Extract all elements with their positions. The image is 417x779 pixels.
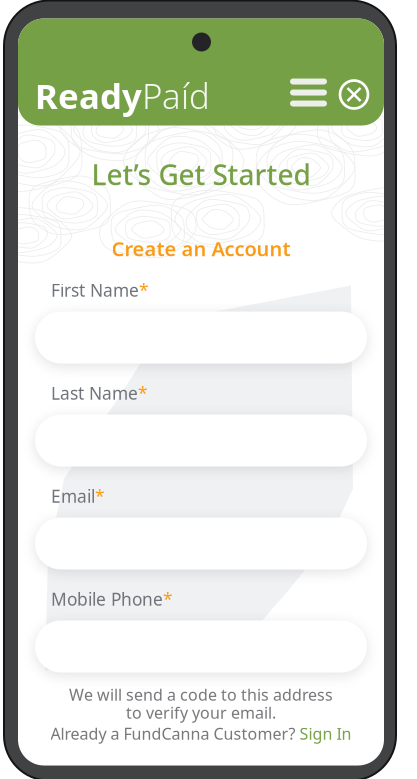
- staticText: Sign In: [299, 723, 351, 744]
- staticText: *: [138, 381, 148, 404]
- button[interactable]: Close: [332, 72, 376, 116]
- staticText: *: [139, 278, 149, 301]
- staticText: Last Name: [51, 381, 138, 404]
- staticText: Ready: [35, 72, 142, 118]
- button[interactable]: Menu: [284, 68, 333, 116]
- staticText: to verify your email.: [126, 702, 276, 723]
- staticText: *: [95, 484, 105, 507]
- staticText: Create an Account: [111, 235, 290, 262]
- button[interactable]: Sign In: [299, 723, 351, 744]
- staticText: First Name: [51, 278, 139, 301]
- staticText: *: [163, 587, 173, 610]
- staticText: Mobile Phone: [51, 587, 163, 610]
- staticText: Let’s Get Started: [91, 156, 310, 193]
- staticText: Email: [51, 484, 95, 507]
- staticText: Paíd: [142, 72, 210, 118]
- staticText: Already a FundCanna Customer?: [50, 723, 295, 744]
- staticText: We will send a code to this address: [69, 684, 333, 705]
